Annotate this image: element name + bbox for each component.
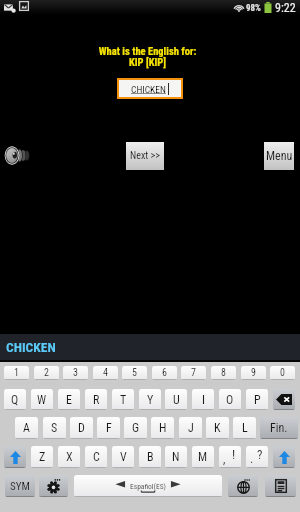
button[interactable]: , (219, 446, 241, 468)
button[interactable]: U (165, 389, 187, 410)
staticText: U (173, 393, 180, 407)
staticText: I (202, 393, 205, 407)
button[interactable]: Español(ES) (74, 475, 222, 497)
button[interactable] (4, 446, 26, 468)
button[interactable]: K (206, 417, 229, 439)
button[interactable]: 4 (93, 366, 118, 380)
staticText: T (120, 393, 127, 407)
button[interactable]: 9 (241, 366, 266, 380)
button[interactable]: H (151, 417, 174, 439)
button[interactable]: W (31, 389, 53, 410)
staticText: B (147, 450, 154, 464)
button[interactable]: I (192, 389, 214, 410)
staticText: 3 (73, 367, 78, 379)
staticText: What is the English for: KIP [KIP] (0, 45, 295, 68)
button[interactable]: D (70, 417, 93, 439)
button[interactable]: 2 (34, 366, 59, 380)
button[interactable]: B (139, 446, 161, 468)
button[interactable]: R (85, 389, 107, 410)
button[interactable]: Play pronunciation (2, 143, 29, 168)
staticText: SYM (10, 480, 30, 493)
staticText: D (78, 421, 85, 435)
staticText: C (93, 450, 100, 464)
staticText: Fin. (270, 421, 288, 435)
staticText: 2 (44, 367, 49, 379)
staticText: F (106, 421, 112, 435)
button[interactable]: N (165, 446, 187, 468)
button[interactable]: G (124, 417, 147, 439)
button[interactable] (273, 389, 295, 410)
button[interactable]: M (192, 446, 214, 468)
button[interactable] (39, 475, 68, 497)
button[interactable]: J (179, 417, 202, 439)
button[interactable]: P (246, 389, 268, 410)
button[interactable] (265, 475, 296, 497)
staticText: Next >> (130, 150, 160, 162)
button[interactable]: F (97, 417, 120, 439)
staticText: Z (39, 450, 46, 464)
staticText: , (223, 452, 226, 466)
staticText: J (188, 421, 194, 435)
button[interactable]: O (219, 389, 241, 410)
button[interactable]: X (58, 446, 80, 468)
staticText: E (66, 393, 72, 407)
button[interactable] (228, 475, 258, 497)
button[interactable]: E (58, 389, 80, 410)
staticText: 9 (251, 367, 256, 379)
staticText: 98% (246, 3, 261, 14)
staticText: ? (257, 447, 263, 462)
staticText: N (172, 450, 180, 464)
staticText: S (51, 421, 58, 435)
button[interactable]: CHICKEN (6, 339, 56, 355)
button[interactable]: S (43, 417, 66, 439)
button[interactable]: SYM (5, 475, 35, 497)
button[interactable]: T (112, 389, 134, 410)
staticText: 6 (162, 367, 167, 379)
button[interactable]: 7 (181, 366, 206, 380)
staticText: X (66, 450, 73, 464)
button[interactable] (273, 446, 295, 468)
button[interactable]: L (233, 417, 256, 439)
button[interactable]: Z (31, 446, 53, 468)
staticText: P (254, 393, 261, 407)
staticText: . (250, 452, 254, 466)
staticText: A (23, 421, 30, 435)
button[interactable]: V (112, 446, 134, 468)
staticText: 9:22 (275, 1, 296, 15)
button[interactable]: 6 (152, 366, 177, 380)
staticText: V (120, 450, 127, 464)
staticText: CHICKEN (131, 84, 166, 95)
button[interactable]: Next >> (126, 142, 164, 170)
staticText: O (226, 393, 234, 407)
button[interactable]: Q (4, 389, 26, 410)
staticText: R (93, 393, 100, 407)
staticText: Menu (266, 149, 293, 163)
button[interactable]: 3 (63, 366, 88, 380)
staticText: ! (232, 447, 236, 462)
button[interactable]: . (246, 446, 268, 468)
staticText: 4 (103, 367, 108, 379)
button[interactable]: 0 (270, 366, 295, 380)
staticText: Y (147, 393, 154, 407)
staticText: 0 (280, 367, 285, 379)
staticText: G (132, 421, 140, 435)
staticText: L (242, 421, 248, 435)
staticText: M (198, 450, 208, 464)
staticText: Q (11, 393, 19, 407)
button[interactable]: 1 (4, 366, 29, 380)
button[interactable]: Fin. (260, 417, 298, 439)
staticText: 1 (14, 367, 19, 379)
button[interactable]: Y (139, 389, 161, 410)
staticText: 5 (132, 367, 137, 379)
button[interactable]: 5 (122, 366, 147, 380)
staticText: W (37, 393, 47, 407)
button[interactable]: C (85, 446, 107, 468)
button[interactable]: A (15, 417, 38, 439)
staticText: 7 (191, 367, 196, 379)
staticText: H (159, 421, 167, 435)
button[interactable]: 8 (211, 366, 236, 380)
button[interactable]: CHICKEN (119, 80, 181, 97)
staticText: K (214, 421, 221, 435)
staticText: Español(ES) (130, 482, 166, 491)
button[interactable]: Menu (264, 142, 294, 170)
